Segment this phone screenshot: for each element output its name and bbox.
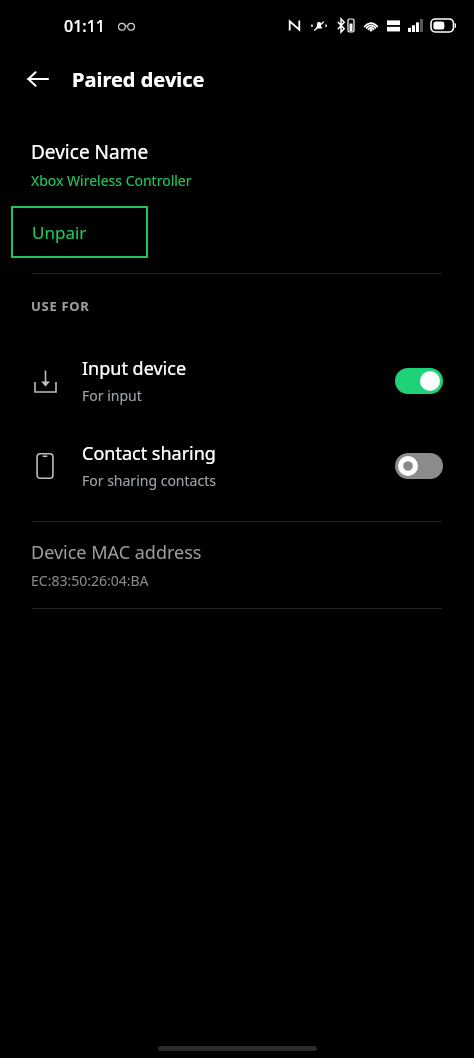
button[interactable]: Input device bbox=[0, 338, 474, 423]
staticText: 01:11 bbox=[64, 15, 105, 37]
staticText: Unpair bbox=[32, 221, 87, 244]
staticText: Paired device bbox=[72, 66, 205, 93]
staticText: For sharing contacts bbox=[82, 471, 216, 490]
button[interactable]: On bbox=[395, 368, 443, 394]
staticText: For input bbox=[82, 386, 142, 405]
button[interactable]: Off bbox=[395, 453, 443, 479]
staticText: Xbox Wireless Controller bbox=[31, 171, 192, 190]
staticText: USE FOR bbox=[31, 297, 90, 315]
staticText: Device Name bbox=[31, 139, 149, 165]
button[interactable]: Back bbox=[14, 55, 62, 103]
staticText: Contact sharing bbox=[82, 441, 216, 466]
button[interactable]: Contact sharing bbox=[0, 423, 474, 508]
staticText: Device MAC address bbox=[31, 540, 202, 565]
staticText: Input device bbox=[82, 356, 187, 381]
staticText: EC:83:50:26:04:BA bbox=[31, 571, 149, 590]
button[interactable]: Unpair bbox=[11, 206, 148, 258]
